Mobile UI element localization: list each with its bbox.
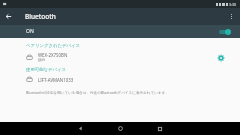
button[interactable]: Back	[0, 8, 17, 25]
button[interactable]: Back	[68, 122, 92, 135]
staticText: 接続	[38, 58, 46, 63]
staticText: ペアリングされたデバイス	[26, 43, 80, 49]
staticText: 3:30	[229, 2, 237, 7]
button[interactable]: Recent apps	[148, 122, 172, 135]
button[interactable]: WEX-2X7S0BN	[0, 50, 240, 64]
button[interactable]: Device settings	[215, 52, 226, 63]
staticText: WEX-2X7S0BN	[38, 52, 68, 58]
staticText: LIFT-AVMAN1033	[38, 77, 74, 83]
staticText: 使用可能なデバイス	[26, 67, 67, 73]
staticText: Bluetoothの設定を開いている場合は、付近のBluetoothデバイスに表…	[26, 90, 224, 95]
button[interactable]: Home	[108, 122, 132, 135]
staticText: ON	[26, 28, 34, 35]
button[interactable]: ON	[0, 25, 240, 38]
button[interactable]: More options	[223, 8, 240, 25]
staticText: Bluetooth	[25, 12, 56, 21]
button[interactable]: LIFT-AVMAN1033	[0, 74, 240, 85]
